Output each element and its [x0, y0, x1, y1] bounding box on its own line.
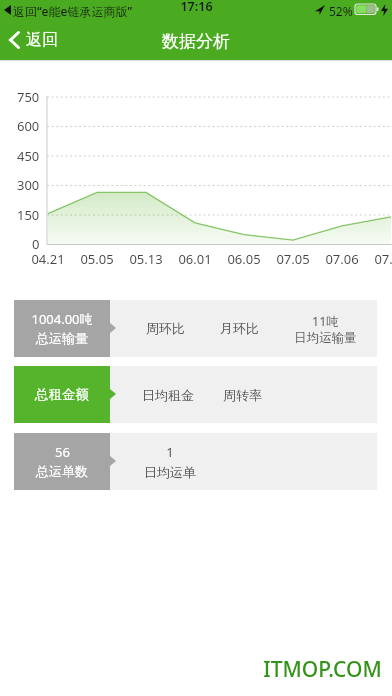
staticText: 返回	[26, 30, 58, 50]
staticText: 周转率	[223, 387, 262, 403]
staticText: 0	[32, 235, 40, 253]
staticText: 月环比	[220, 320, 259, 336]
staticText: 750	[17, 88, 40, 106]
button[interactable]: 返回	[0, 20, 72, 60]
staticText: 150	[17, 206, 40, 224]
button[interactable]	[110, 366, 377, 423]
staticText: 1	[166, 443, 174, 461]
staticText: 600	[17, 117, 40, 135]
staticText: 07.06	[325, 250, 359, 268]
staticText: 04.21	[31, 250, 65, 268]
staticText: 总租金额	[35, 386, 89, 403]
staticText: 06.05	[227, 250, 261, 268]
staticText: 周环比	[146, 320, 185, 336]
staticText: 总运输量	[36, 330, 88, 346]
button[interactable]: 1004.00吨	[14, 300, 110, 357]
staticText: 11吨	[312, 313, 339, 330]
staticText: 07.05	[276, 250, 310, 268]
staticText: 17:16	[180, 0, 213, 15]
button[interactable]: 56	[14, 433, 110, 490]
staticText: 日均运单	[144, 464, 196, 480]
staticText: 07.07	[374, 250, 392, 268]
staticText: 52%	[329, 3, 353, 19]
staticText: 450	[17, 147, 40, 165]
staticText: 05.13	[129, 250, 163, 268]
staticText: 总运单数	[36, 463, 88, 479]
staticText: 56	[55, 443, 70, 461]
staticText: 06.01	[178, 250, 212, 268]
staticText: 日均租金	[142, 387, 194, 403]
staticText: 日均运输量	[294, 330, 357, 346]
staticText: 数据分析	[162, 31, 230, 52]
staticText: 300	[17, 176, 40, 194]
button[interactable]: 总租金额	[14, 366, 110, 423]
staticText: 返回“e能e链承运商版”	[13, 3, 132, 19]
staticText: 1004.00吨	[31, 310, 93, 328]
staticText: 05.05	[80, 250, 114, 268]
staticText: ITMOP.COM	[263, 655, 382, 683]
button[interactable]	[110, 300, 377, 357]
button[interactable]	[110, 433, 377, 490]
